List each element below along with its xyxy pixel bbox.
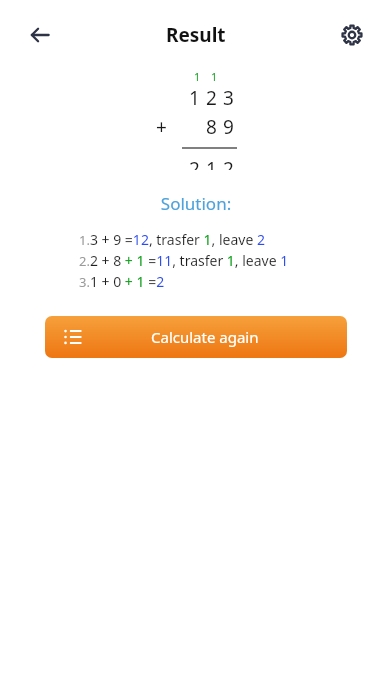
staticText: 1 bbox=[194, 70, 200, 84]
staticText: Solution: bbox=[0, 192, 392, 215]
staticText: 3 bbox=[223, 85, 234, 111]
staticText: 1 bbox=[211, 70, 217, 84]
staticText: 2.2 + 8 + 1 =11, trasfer 1, leave 1 bbox=[79, 251, 289, 270]
staticText: 2 bbox=[223, 156, 234, 170]
staticText: 1 bbox=[189, 85, 200, 111]
staticText: 2 bbox=[189, 156, 200, 170]
button[interactable]: Settings bbox=[330, 13, 374, 57]
staticText: Result bbox=[166, 22, 226, 48]
staticText: 2 bbox=[206, 85, 217, 111]
staticText: Calculate again bbox=[151, 327, 259, 347]
staticText: 8 bbox=[206, 114, 217, 140]
staticText: 9 bbox=[223, 114, 234, 140]
button[interactable]: Calculate again bbox=[45, 316, 347, 358]
staticText: 1.3 + 9 =12, trasfer 1, leave 2 bbox=[79, 230, 265, 249]
button[interactable]: Back bbox=[18, 13, 62, 57]
staticText: 3.1 + 0 + 1 =2 bbox=[79, 272, 165, 291]
staticText: 1 bbox=[206, 156, 217, 170]
staticText: + bbox=[156, 114, 167, 140]
